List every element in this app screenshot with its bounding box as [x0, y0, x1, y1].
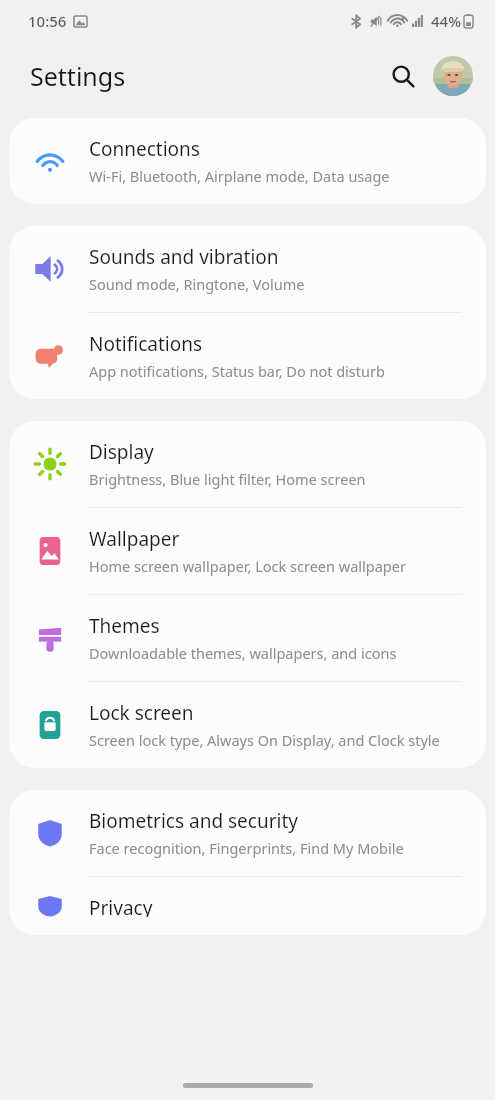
button[interactable]: Notifications: [9, 313, 486, 399]
button[interactable]: Profile: [433, 56, 473, 96]
staticText: Downloadable themes, wallpapers, and ico…: [89, 643, 397, 663]
staticText: Brightness, Blue light filter, Home scre…: [89, 469, 366, 489]
staticText: Wallpaper: [89, 526, 180, 552]
staticText: 10:56: [28, 11, 67, 31]
staticText: Connections: [89, 136, 200, 162]
staticText: 44%: [431, 11, 461, 31]
button[interactable]: Display: [9, 421, 486, 507]
button[interactable]: Wallpaper: [9, 508, 486, 594]
button[interactable]: Privacy: [9, 877, 486, 935]
button[interactable]: Search: [381, 54, 425, 98]
staticText: Display: [89, 439, 154, 465]
button[interactable]: Themes: [9, 595, 486, 681]
staticText: Home screen wallpaper, Lock screen wallp…: [89, 556, 406, 576]
staticText: Themes: [89, 613, 160, 639]
staticText: Screen lock type, Always On Display, and…: [89, 730, 440, 750]
staticText: Wi-Fi, Bluetooth, Airplane mode, Data us…: [89, 166, 390, 186]
button[interactable]: Sounds and vibration: [9, 226, 486, 312]
staticText: App notifications, Status bar, Do not di…: [89, 361, 385, 381]
button[interactable]: Lock screen: [9, 682, 486, 768]
staticText: Face recognition, Fingerprints, Find My …: [89, 838, 404, 858]
staticText: Biometrics and security: [89, 808, 299, 834]
staticText: Notifications: [89, 331, 203, 357]
button[interactable]: Biometrics and security: [9, 790, 486, 876]
staticText: Privacy: [89, 895, 153, 917]
staticText: Settings: [30, 59, 126, 93]
staticText: Lock screen: [89, 700, 194, 726]
button[interactable]: Connections: [9, 118, 486, 204]
staticText: Sounds and vibration: [89, 244, 279, 270]
staticText: Sound mode, Ringtone, Volume: [89, 274, 305, 294]
